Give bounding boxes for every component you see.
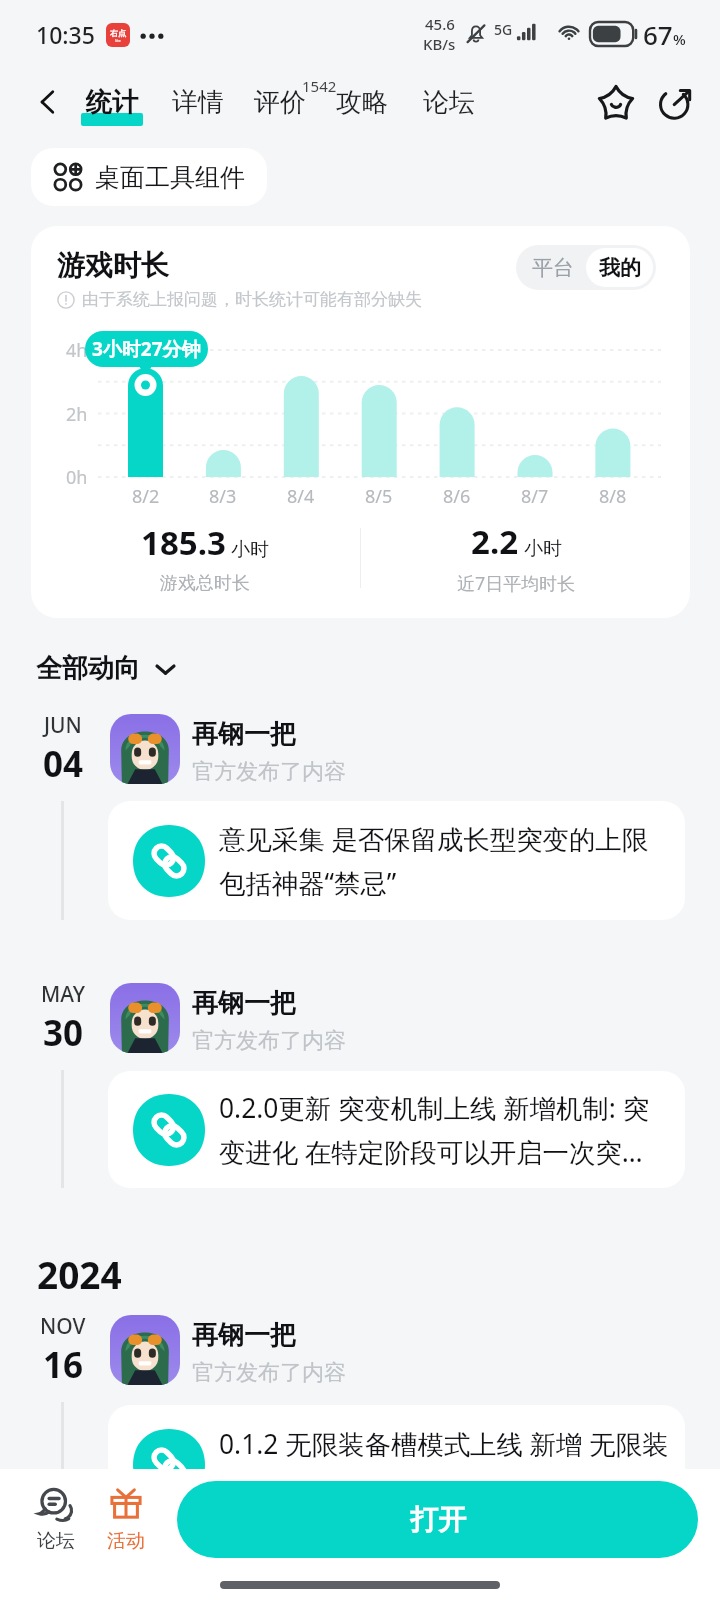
- staticText: 8/2: [132, 484, 160, 509]
- button[interactable]: 全部动向: [36, 652, 178, 685]
- button[interactable]: 详情: [170, 72, 226, 133]
- staticText: 8/5: [365, 484, 393, 509]
- staticText: 04: [43, 740, 84, 788]
- button[interactable]: 论坛: [18, 1486, 93, 1553]
- button[interactable]: 0.2.0更新 突变机制上线 新增机制: 突变进化 在特定阶段可以开启一次突…: [108, 1071, 685, 1188]
- staticText: 8/8: [599, 484, 627, 509]
- staticText: 1542: [302, 76, 337, 96]
- button[interactable]: 评价: [254, 72, 322, 133]
- staticText: 桌面工具组件: [95, 162, 245, 193]
- button[interactable]: Share: [650, 76, 702, 128]
- staticText: 论坛: [37, 1529, 75, 1553]
- staticText: 官方发布了内容: [192, 758, 346, 786]
- button[interactable]: 我的: [586, 248, 653, 287]
- staticText: 评价: [254, 86, 306, 119]
- staticText: KB/s: [423, 34, 456, 54]
- staticText: 2h: [66, 402, 88, 427]
- button[interactable]: Favorite: [590, 76, 642, 128]
- staticText: 0h: [66, 465, 88, 490]
- staticText: 2.2: [471, 519, 519, 564]
- staticText: 10:35: [36, 19, 95, 50]
- staticText: lite: [115, 38, 121, 43]
- staticText: 活动: [107, 1529, 145, 1553]
- button[interactable]: 统计: [79, 72, 145, 133]
- staticText: 3小时27分钟: [92, 336, 201, 362]
- staticText: 意见采集 是否保留成长型突变的上限包括神器“禁忌”: [219, 821, 664, 901]
- staticText: 打开: [410, 1502, 466, 1537]
- staticText: 官方发布了内容: [192, 1359, 346, 1387]
- staticText: 由于系统上报问题，时长统计可能有部分缺失: [82, 289, 422, 310]
- staticText: 4h: [66, 338, 88, 363]
- staticText: 8/6: [443, 484, 471, 509]
- staticText: 游戏时长: [57, 248, 169, 283]
- staticText: 5G: [494, 20, 513, 39]
- button[interactable]: 桌面工具组件: [31, 148, 267, 206]
- staticText: 8/3: [209, 484, 237, 509]
- staticText: 185.3: [141, 520, 226, 565]
- staticText: 8/7: [521, 484, 549, 509]
- staticText: 官方发布了内容: [192, 1027, 346, 1055]
- staticText: 小时: [524, 537, 562, 561]
- button[interactable]: 论坛: [421, 72, 477, 133]
- staticText: 论坛: [423, 86, 475, 119]
- staticText: 我的: [599, 255, 641, 281]
- staticText: NOV: [40, 1312, 86, 1341]
- staticText: %: [673, 29, 686, 49]
- staticText: 统计: [86, 86, 138, 119]
- staticText: 16: [43, 1341, 84, 1389]
- staticText: 0.2.0更新 突变机制上线 新增机制: 突变进化 在特定阶段可以开启一次突…: [219, 1090, 664, 1170]
- button[interactable]: 活动: [88, 1486, 163, 1553]
- button[interactable]: Back: [24, 78, 72, 126]
- staticText: 游戏总时长: [160, 572, 250, 595]
- button[interactable]: 意见采集 是否保留成长型突变的上限包括神器“禁忌”: [108, 801, 685, 920]
- staticText: 详情: [172, 86, 224, 119]
- staticText: 8/4: [287, 484, 315, 509]
- button[interactable]: 打开: [177, 1481, 698, 1558]
- staticText: 攻略: [336, 86, 388, 119]
- staticText: 45.6: [425, 14, 455, 34]
- staticText: 平台: [532, 255, 574, 281]
- staticText: 全部动向: [36, 652, 140, 685]
- staticText: 0.1.2 无限装备槽模式上线 新增 无限装​备槽模式上线: [219, 1426, 683, 1504]
- staticText: 近7日平均时长: [457, 571, 576, 596]
- staticText: 再钢一把: [192, 718, 296, 751]
- staticText: 小时: [231, 538, 269, 562]
- button[interactable]: 平台: [519, 248, 586, 287]
- staticText: 再钢一把: [192, 1319, 296, 1352]
- staticText: 再钢一把: [192, 987, 296, 1020]
- button[interactable]: 攻略: [334, 72, 390, 133]
- staticText: MAY: [41, 980, 86, 1009]
- staticText: 2024: [37, 1249, 122, 1299]
- staticText: 右点: [110, 28, 126, 38]
- staticText: 30: [43, 1009, 84, 1057]
- button[interactable]: 0.1.2 无限装备槽模式上线 新增 无限装​备槽模式上线: [108, 1405, 685, 1524]
- staticText: 67: [643, 17, 673, 52]
- staticText: JUN: [44, 711, 82, 740]
